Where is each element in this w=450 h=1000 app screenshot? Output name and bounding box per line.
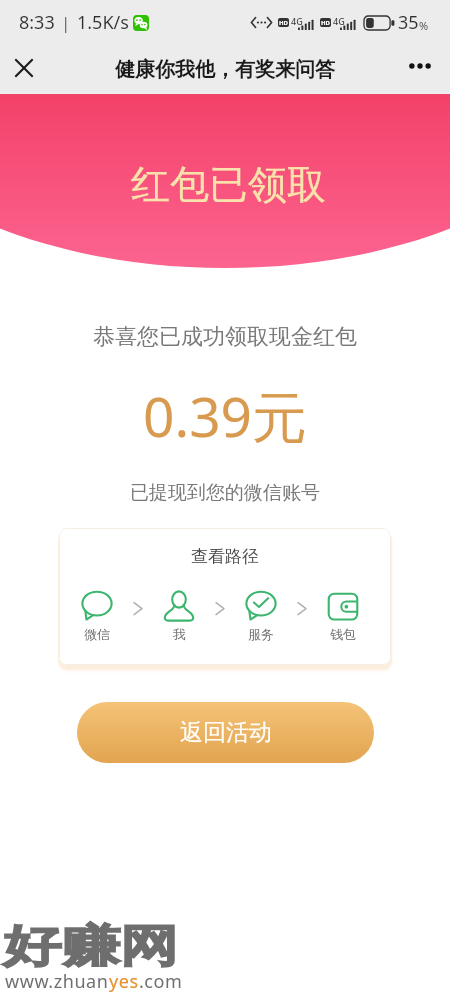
staticText: 返回活动 (180, 718, 272, 747)
staticText: HD (321, 19, 330, 27)
staticText: 健康你我他，有奖来问答 (115, 57, 335, 82)
staticText: 4G (291, 15, 303, 27)
staticText: 服务 (248, 626, 274, 642)
staticText: yes (109, 969, 139, 994)
button[interactable]: 微信 (73, 591, 121, 641)
staticText: 红包已领取 (131, 160, 326, 209)
button[interactable]: Close (0, 44, 48, 92)
staticText: 8:33 (19, 10, 55, 35)
staticText: 微信 (84, 626, 110, 642)
button[interactable]: More options (397, 43, 443, 89)
staticText: 我 (173, 626, 186, 642)
staticText: www.zhuan (5, 969, 109, 994)
button[interactable]: 返回活动 (77, 702, 374, 763)
button[interactable]: 钱包 (319, 591, 367, 641)
staticText: 好赚网 (3, 919, 179, 974)
staticText: % (419, 18, 429, 33)
staticText: 1.5K/s (77, 10, 129, 35)
button[interactable]: 服务 (237, 591, 285, 641)
staticText: 查看路径 (191, 546, 259, 567)
staticText: HD (279, 19, 288, 27)
staticText: 35 (398, 10, 419, 35)
staticText: 4G (333, 15, 345, 27)
button[interactable]: 我 (155, 591, 203, 641)
staticText: | (61, 11, 71, 34)
staticText: 钱包 (330, 626, 356, 642)
button[interactable]: 查看路径 (59, 528, 391, 665)
staticText: .com (139, 969, 183, 994)
staticText: 已提现到您的微信账号 (0, 481, 450, 505)
staticText: 0.39元 (0, 378, 450, 453)
staticText: 恭喜您已成功领取现金红包 (0, 323, 450, 351)
